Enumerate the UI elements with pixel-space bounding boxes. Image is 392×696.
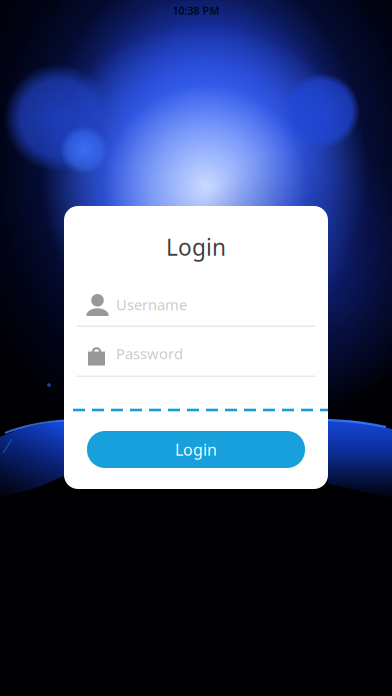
staticText: Login: [175, 439, 217, 460]
button[interactable]: Login: [87, 431, 305, 468]
staticText: 10:38 PM: [172, 3, 219, 18]
staticText: Carrier: [7, 3, 41, 18]
button[interactable]: Username: [77, 290, 315, 327]
staticText: Password: [116, 344, 183, 363]
staticText: Username: [116, 295, 187, 314]
button[interactable]: Password: [77, 340, 315, 377]
staticText: Login: [166, 232, 226, 262]
